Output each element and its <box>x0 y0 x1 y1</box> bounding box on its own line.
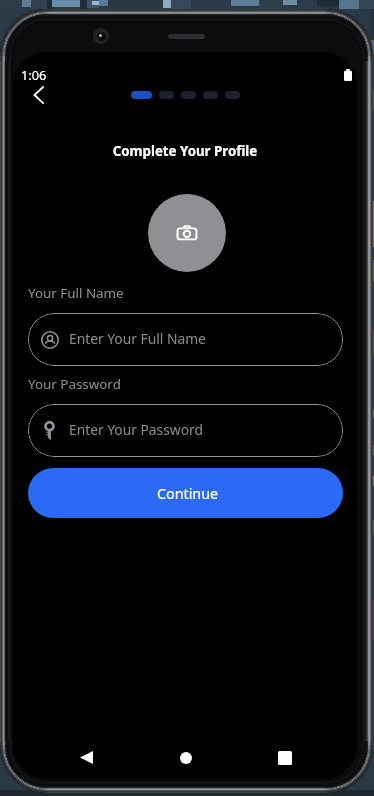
button[interactable]: Recent apps <box>267 740 303 776</box>
button[interactable] <box>159 91 174 99</box>
button[interactable]: Enter Your Full Name <box>28 313 343 366</box>
staticText: Enter Your Full Name <box>69 329 206 348</box>
button[interactable] <box>181 91 196 99</box>
staticText: Continue <box>157 484 219 503</box>
button[interactable]: Add profile photo <box>148 194 226 272</box>
button[interactable]: Enter Your Password <box>28 404 343 457</box>
staticText: 1:06 <box>21 66 47 83</box>
button[interactable] <box>225 91 240 99</box>
button[interactable]: Back <box>68 739 104 775</box>
staticText: Complete Your Profile <box>13 142 357 160</box>
button[interactable]: Back <box>21 77 57 113</box>
button[interactable]: Continue <box>28 468 343 518</box>
button[interactable]: Home <box>168 740 204 776</box>
staticText: Enter Your Password <box>69 420 203 439</box>
staticText: Your Password <box>28 375 121 393</box>
staticText: Your Full Name <box>28 284 124 302</box>
button[interactable] <box>131 91 152 99</box>
button[interactable] <box>203 91 218 99</box>
